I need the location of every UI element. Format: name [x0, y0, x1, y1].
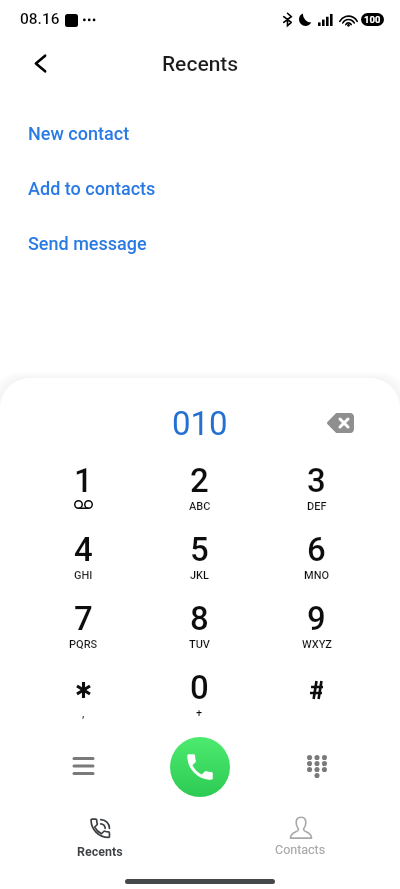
staticText: JKL	[190, 569, 209, 582]
button[interactable]: Recents	[0, 816, 200, 876]
staticText: Send message	[28, 233, 147, 254]
button[interactable]: 2	[141, 456, 258, 525]
button[interactable]: 0	[141, 663, 258, 732]
staticText: 1	[74, 461, 93, 500]
staticText: 9	[307, 599, 326, 638]
staticText: 3	[307, 461, 326, 500]
button[interactable]: Contacts	[200, 816, 400, 876]
staticText: 010	[172, 404, 228, 443]
button[interactable]: Call log	[61, 743, 106, 788]
staticText: Contacts	[275, 842, 326, 857]
button[interactable]: 3	[258, 456, 375, 525]
staticText: Add to contacts	[28, 178, 156, 199]
staticText: DEF	[307, 500, 327, 513]
staticText: 100	[364, 14, 381, 25]
staticText: MNO	[304, 569, 330, 582]
button[interactable]: Dialpad	[294, 744, 339, 789]
staticText: 5	[190, 530, 209, 569]
staticText: +	[196, 707, 203, 720]
staticText: 08.16	[20, 10, 60, 28]
staticText: TUV	[189, 638, 210, 651]
button[interactable]: Call	[170, 737, 230, 797]
button[interactable]: 1	[25, 456, 141, 525]
button[interactable]: 8	[141, 594, 258, 663]
staticText: Recents	[77, 844, 123, 859]
button[interactable]: Back	[18, 41, 62, 85]
button[interactable]: Add to contacts	[0, 161, 400, 215]
button[interactable]: Backspace	[318, 401, 362, 445]
staticText: 8	[190, 599, 209, 638]
button[interactable]: Send message	[0, 216, 400, 270]
button[interactable]: 5	[141, 525, 258, 594]
button[interactable]: ,	[25, 663, 141, 732]
staticText: WXYZ	[302, 638, 332, 651]
staticText: 0	[190, 668, 209, 707]
staticText: 6	[307, 530, 326, 569]
staticText: 7	[74, 599, 93, 638]
staticText: ABC	[189, 500, 211, 513]
staticText: PQRS	[69, 638, 98, 651]
button[interactable]: 7	[25, 594, 141, 663]
button[interactable]: New contact	[0, 106, 400, 160]
staticText: Recents	[162, 52, 239, 77]
staticText: 4	[74, 530, 93, 569]
button[interactable]: 9	[258, 594, 375, 663]
button[interactable]	[258, 663, 375, 732]
staticText: ,	[82, 707, 85, 720]
staticText: 2	[190, 461, 209, 500]
button[interactable]: 6	[258, 525, 375, 594]
staticText: New contact	[28, 123, 130, 144]
button[interactable]: 4	[25, 525, 141, 594]
staticText: GHI	[74, 569, 93, 582]
